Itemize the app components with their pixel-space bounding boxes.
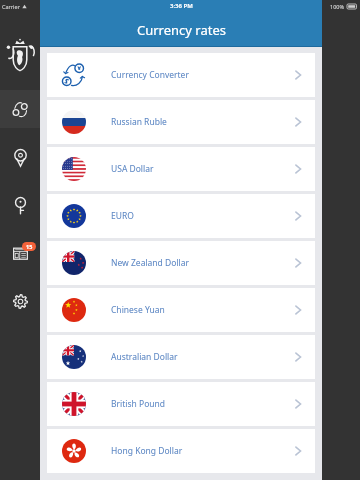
button[interactable]: EURO xyxy=(47,194,315,238)
button[interactable]: Currency Converter xyxy=(47,53,315,97)
staticText: Currency rates xyxy=(137,21,226,39)
button[interactable]: News xyxy=(0,234,40,272)
button[interactable]: British Pound xyxy=(47,382,315,426)
button[interactable]: Settings xyxy=(0,282,40,320)
staticText: British Pound xyxy=(111,398,166,410)
button[interactable]: Hong Kong Dollar xyxy=(47,429,315,473)
button[interactable]: Chinese Yuan xyxy=(47,288,315,332)
staticText: New Zealand Dollar xyxy=(111,257,190,269)
staticText: 3:36 PM xyxy=(170,2,193,10)
staticText: 100% xyxy=(330,3,345,10)
staticText: 15 xyxy=(26,243,33,250)
staticText: Carrier xyxy=(2,3,20,10)
button[interactable]: Locations xyxy=(0,138,40,176)
staticText: Currency Converter xyxy=(111,69,189,81)
staticText: Chinese Yuan xyxy=(111,304,165,316)
staticText: Hong Kong Dollar xyxy=(111,445,183,457)
button[interactable]: USA Dollar xyxy=(47,147,315,191)
button[interactable]: New Zealand Dollar xyxy=(47,241,315,285)
button[interactable]: Australian Dollar xyxy=(47,335,315,379)
staticText: EURO xyxy=(111,210,134,222)
staticText: USA Dollar xyxy=(111,163,154,175)
staticText: Australian Dollar xyxy=(111,351,178,363)
button[interactable]: Russian Ruble xyxy=(47,100,315,144)
button[interactable]: Currency rates xyxy=(0,90,40,128)
button[interactable]: Home xyxy=(0,34,40,76)
button[interactable]: Security xyxy=(0,186,40,224)
staticText: Russian Ruble xyxy=(111,116,167,128)
